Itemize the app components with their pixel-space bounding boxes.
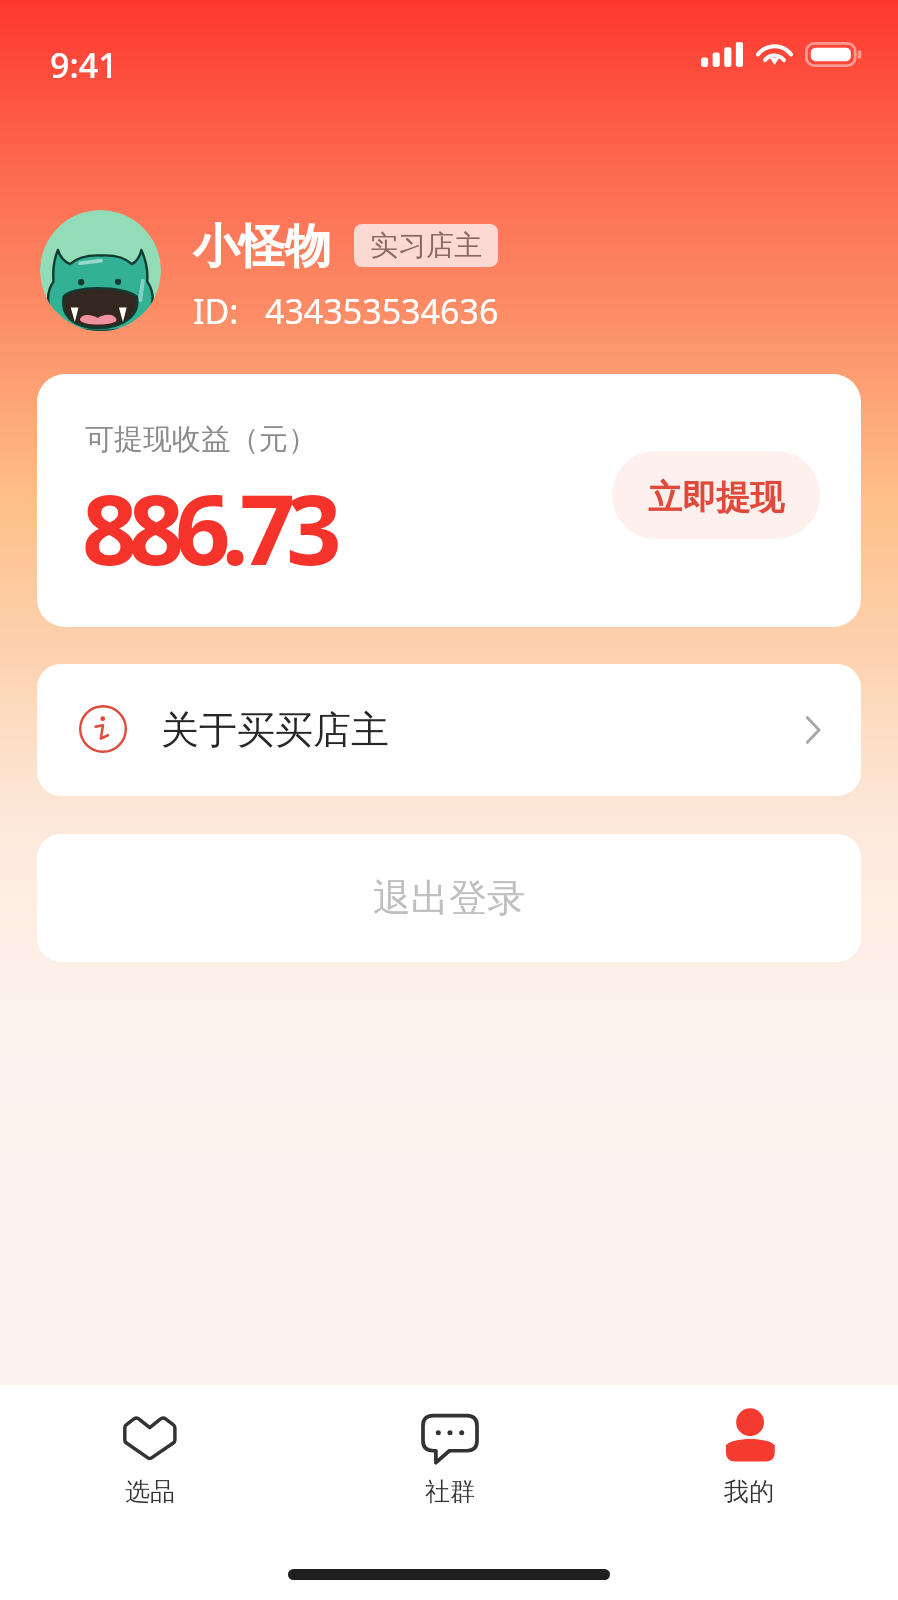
- staticText: 小怪物: [193, 218, 331, 276]
- staticText: 社群: [425, 1476, 475, 1507]
- staticText: 9:41: [50, 42, 118, 88]
- button[interactable]: 立即提现: [612, 451, 820, 539]
- button[interactable]: 实习店主: [354, 224, 498, 267]
- staticText: 可提现收益（元）: [85, 421, 317, 458]
- staticText: 选品: [125, 1476, 175, 1507]
- button[interactable]: Avatar: [40, 210, 161, 331]
- staticText: 立即提现: [648, 476, 784, 519]
- button[interactable]: 退出登录: [37, 834, 861, 962]
- button[interactable]: 关于买买店主: [37, 664, 861, 796]
- staticText: 实习店主: [370, 228, 482, 263]
- button[interactable]: 我的: [659, 1385, 839, 1507]
- staticText: 关于买买店主: [161, 706, 389, 754]
- button[interactable]: 选品: [60, 1385, 240, 1507]
- button[interactable]: 可提现收益（元）: [37, 374, 861, 627]
- staticText: 退出登录: [373, 874, 525, 922]
- staticText: ID: 434353534636: [193, 288, 499, 334]
- button[interactable]: 社群: [360, 1385, 540, 1507]
- staticText: 我的: [724, 1476, 774, 1507]
- staticText: 886.73: [82, 461, 333, 593]
